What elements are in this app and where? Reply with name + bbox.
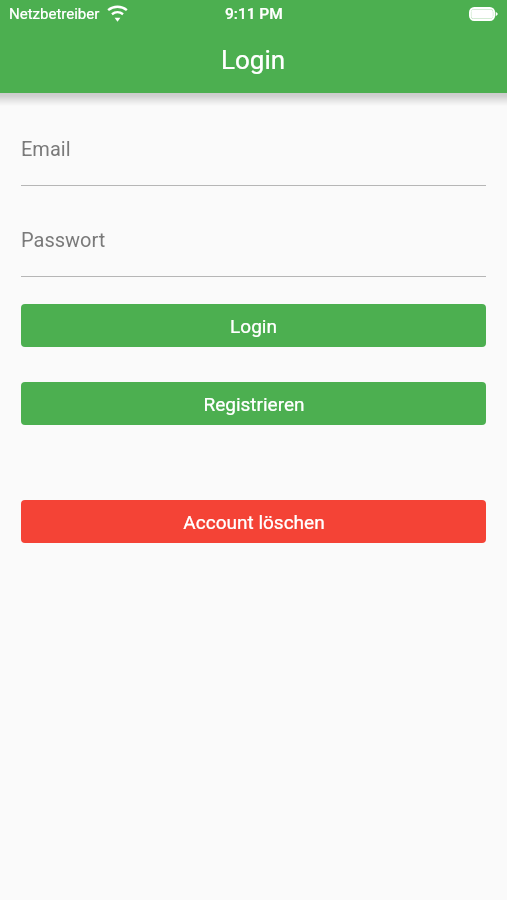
staticText: Passwort: [21, 228, 106, 251]
button[interactable]: Registrieren: [21, 382, 486, 425]
staticText: 9:11 PM: [225, 5, 283, 23]
staticText: Netzbetreiber: [9, 5, 100, 23]
staticText: Login: [230, 315, 277, 337]
staticText: Account löschen: [183, 511, 325, 533]
other: Battery full: [469, 7, 498, 21]
button[interactable]: Login: [21, 304, 486, 347]
button[interactable]: Account löschen: [21, 500, 486, 543]
other: Wi-Fi: [106, 6, 129, 22]
staticText: Registrieren: [203, 393, 305, 415]
staticText: Email: [21, 137, 71, 160]
staticText: Login: [221, 45, 286, 75]
button[interactable]: Passwort: [21, 228, 486, 277]
button[interactable]: Email: [21, 137, 486, 186]
